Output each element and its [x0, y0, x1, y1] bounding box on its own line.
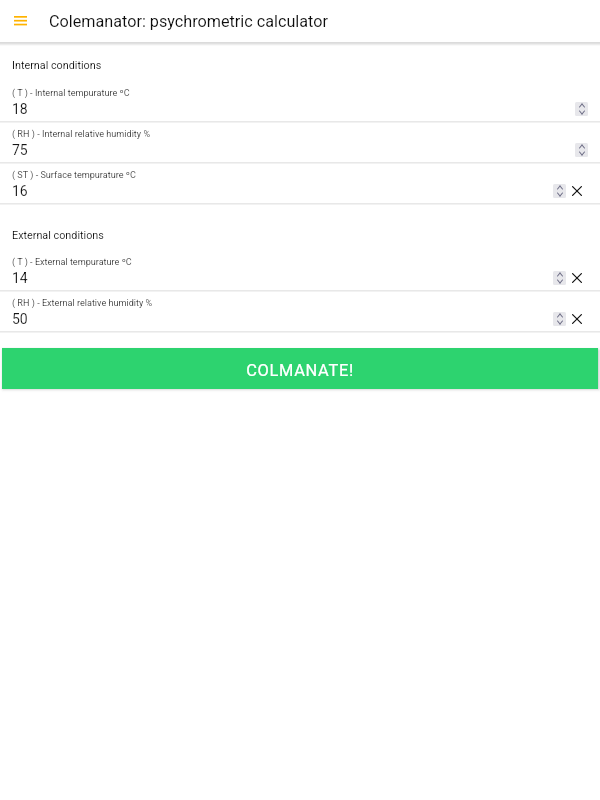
- button[interactable]: ( T ) - External tempurature ºC: [0, 250, 600, 291]
- staticText: Internal conditions: [12, 59, 102, 72]
- button[interactable]: Clear field: [568, 182, 586, 200]
- staticText: 50: [12, 311, 28, 327]
- button[interactable]: ( RH ) - Internal relative humidity %: [0, 122, 600, 163]
- staticText: ( RH ) - External relative humidity %: [12, 298, 153, 309]
- staticText: ( T ) - External tempurature ºC: [12, 257, 132, 268]
- staticText: 75: [12, 142, 28, 158]
- button[interactable]: COLMANATE!: [2, 348, 598, 389]
- button[interactable]: Increment or decrement value: [553, 271, 566, 285]
- staticText: ( T ) - Internal tempurature ºC: [12, 88, 130, 99]
- staticText: COLMANATE!: [246, 361, 354, 380]
- button[interactable]: ( ST ) - Surface tempurature ºC: [0, 163, 600, 204]
- staticText: 16: [12, 183, 28, 199]
- button[interactable]: Increment or decrement value: [553, 312, 566, 326]
- staticText: ( ST ) - Surface tempurature ºC: [12, 170, 136, 181]
- button[interactable]: Increment or decrement value: [553, 184, 566, 198]
- button[interactable]: ( RH ) - External relative humidity %: [0, 291, 600, 332]
- button[interactable]: Increment or decrement value: [575, 143, 588, 157]
- staticText: Colemanator: psychrometric calculator: [49, 12, 328, 31]
- button[interactable]: Clear field: [568, 310, 586, 328]
- staticText: ( RH ) - Internal relative humidity %: [12, 129, 151, 140]
- button[interactable]: Clear field: [568, 269, 586, 287]
- staticText: 14: [12, 270, 28, 286]
- staticText: External conditions: [12, 229, 104, 242]
- button[interactable]: Increment or decrement value: [575, 102, 588, 116]
- staticText: 18: [12, 101, 28, 117]
- button[interactable]: ( T ) - Internal tempurature ºC: [0, 81, 600, 122]
- button[interactable]: Open navigation menu: [0, 0, 41, 42]
